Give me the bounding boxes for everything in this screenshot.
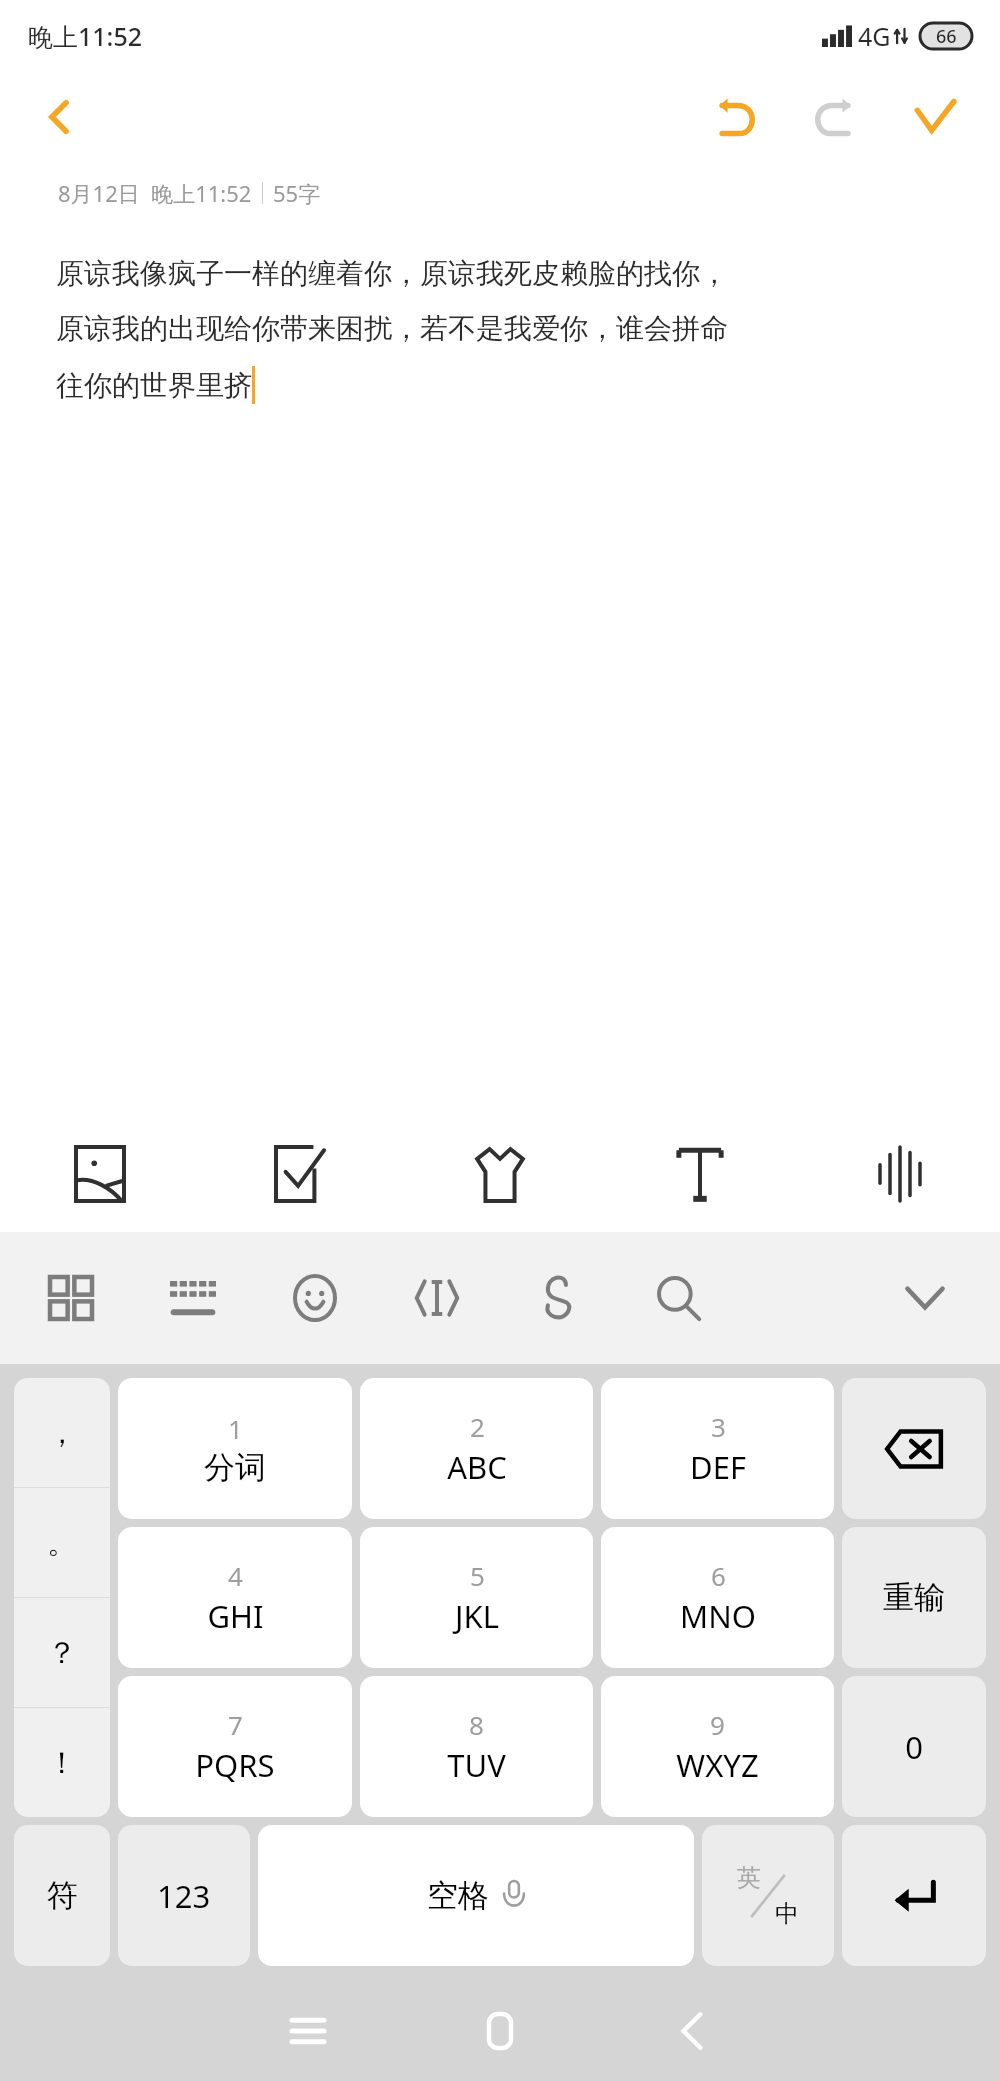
staticText: 4 xyxy=(228,1558,243,1593)
button[interactable]: Insert image xyxy=(0,1116,200,1232)
staticText: PQRS xyxy=(195,1744,275,1786)
staticText: 55字 xyxy=(273,178,321,208)
staticText: 符 xyxy=(47,1876,78,1915)
staticText: 英 xyxy=(737,1863,761,1893)
staticText: 7 xyxy=(228,1707,243,1742)
button[interactable]: Enter xyxy=(842,1825,986,1966)
button[interactable]: 2 xyxy=(360,1378,593,1519)
button[interactable]: 8 xyxy=(360,1676,593,1817)
staticText: 9 xyxy=(710,1707,725,1742)
button[interactable]: Apps xyxy=(10,1232,132,1364)
staticText: 晚上11:52 xyxy=(28,19,143,53)
staticText: GHI xyxy=(207,1595,264,1637)
button[interactable]: Clipboard xyxy=(497,1232,618,1364)
staticText: 8月12日 晚上11:52 xyxy=(58,178,252,208)
button[interactable]: 空格 xyxy=(258,1825,694,1966)
button[interactable]: Back xyxy=(24,81,96,153)
staticText: 中 xyxy=(775,1899,799,1929)
button[interactable]: Voice xyxy=(800,1116,1000,1232)
staticText: 往你的世界里挤 xyxy=(56,368,252,403)
button[interactable]: 0 xyxy=(842,1676,986,1817)
button[interactable]: ！ xyxy=(14,1708,110,1817)
button[interactable]: 6 xyxy=(601,1527,834,1668)
button[interactable]: Checklist xyxy=(200,1116,400,1232)
staticText: 3 xyxy=(711,1409,726,1444)
button[interactable]: ， xyxy=(14,1378,110,1487)
staticText: WXYZ xyxy=(676,1744,759,1786)
button[interactable]: Search xyxy=(618,1232,739,1364)
staticText: ？ xyxy=(47,1634,77,1672)
staticText: 5 xyxy=(470,1558,485,1593)
button[interactable]: 符 xyxy=(14,1825,110,1966)
button[interactable]: 5 xyxy=(360,1527,593,1668)
staticText: ！ xyxy=(47,1744,77,1782)
staticText: 66 xyxy=(936,24,957,49)
button[interactable]: Redo xyxy=(792,74,878,160)
button[interactable]: 英 xyxy=(702,1825,834,1966)
button[interactable]: Edit cursor xyxy=(376,1232,497,1364)
staticText: TUV xyxy=(447,1744,506,1786)
button[interactable]: Emoji xyxy=(254,1232,376,1364)
button[interactable]: Home xyxy=(404,1980,596,2081)
staticText: 原谅我像疯子一样的缠着你，原谅我死皮赖脸的找你， xyxy=(56,256,728,291)
staticText: JKL xyxy=(455,1595,499,1637)
staticText: 123 xyxy=(157,1875,211,1917)
button[interactable]: Sticker xyxy=(400,1116,600,1232)
button[interactable]: Done xyxy=(892,74,978,160)
staticText: ABC xyxy=(447,1446,507,1488)
button[interactable]: Backspace xyxy=(842,1378,986,1519)
staticText: 空格 xyxy=(427,1876,489,1915)
staticText: 2 xyxy=(470,1409,485,1444)
staticText: 4G xyxy=(858,19,891,53)
button[interactable]: 。 xyxy=(14,1488,110,1597)
staticText: MNO xyxy=(680,1595,756,1637)
staticText: 重输 xyxy=(883,1578,945,1617)
button[interactable]: 1 xyxy=(118,1378,352,1519)
staticText: 8 xyxy=(469,1707,484,1742)
button[interactable]: Undo xyxy=(692,74,778,160)
staticText: 分词 xyxy=(204,1448,266,1487)
staticText: ， xyxy=(47,1414,77,1452)
button[interactable]: 重输 xyxy=(842,1527,986,1668)
button[interactable]: 7 xyxy=(118,1676,352,1817)
staticText: DEF xyxy=(690,1446,746,1488)
staticText: 原谅我的出现给你带来困扰，若不是我爱你，谁会拼命 xyxy=(56,311,728,346)
button[interactable]: 9 xyxy=(601,1676,834,1817)
button[interactable]: 3 xyxy=(601,1378,834,1519)
staticText: 0 xyxy=(905,1726,923,1768)
button[interactable]: ？ xyxy=(14,1598,110,1707)
button[interactable]: Hide keyboard xyxy=(860,1232,990,1364)
staticText: 。 xyxy=(47,1524,77,1562)
button[interactable]: 123 xyxy=(118,1825,250,1966)
button[interactable]: Keyboard layout xyxy=(132,1232,254,1364)
staticText: 1 xyxy=(228,1411,243,1446)
button[interactable]: 4 xyxy=(118,1527,352,1668)
button[interactable]: Text format xyxy=(600,1116,800,1232)
button[interactable]: Recents xyxy=(212,1980,404,2081)
button[interactable]: Back xyxy=(596,1980,788,2081)
staticText: 6 xyxy=(711,1558,726,1593)
